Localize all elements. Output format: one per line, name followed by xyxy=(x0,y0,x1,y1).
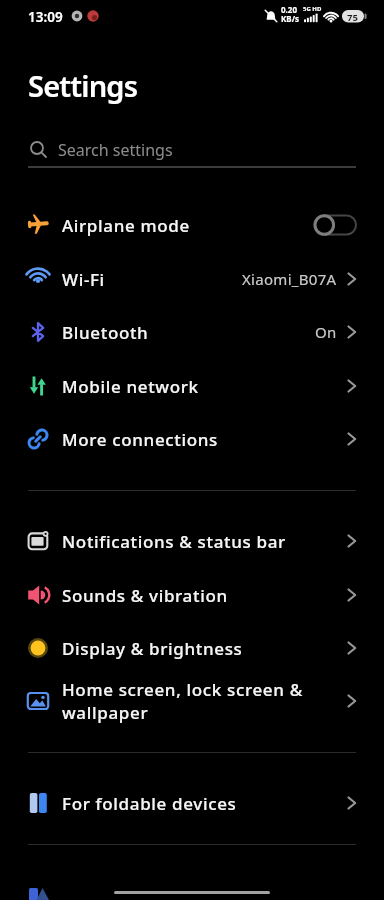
staticText: 0.20 xyxy=(281,4,297,15)
staticText: More connections xyxy=(62,428,218,451)
button[interactable]: Home screen, lock screen & wallpaper xyxy=(0,663,384,739)
staticText: For foldable devices xyxy=(62,792,237,815)
staticText: Bluetooth xyxy=(62,321,149,344)
staticText: Sounds & vibration xyxy=(62,584,228,607)
staticText: Mobile network xyxy=(62,375,199,398)
staticText: Search settings xyxy=(58,139,173,161)
staticText: Wi-Fi xyxy=(62,268,105,291)
button[interactable]: More connections xyxy=(0,412,384,466)
button[interactable]: For foldable devices xyxy=(0,776,384,830)
button[interactable]: Notifications & status bar xyxy=(0,514,384,568)
staticText: Display & brightness xyxy=(62,637,243,660)
button[interactable]: Bluetooth xyxy=(0,305,384,359)
button[interactable]: Wi-Fi xyxy=(0,252,384,306)
staticText: Settings xyxy=(28,66,138,105)
staticText: 5G HD xyxy=(303,5,322,13)
button[interactable]: Display & brightness xyxy=(0,621,384,675)
staticText: Airplane mode xyxy=(62,214,190,237)
staticText: Xiaomi_B07A xyxy=(242,269,337,289)
button[interactable]: Sounds & vibration xyxy=(0,568,384,622)
button[interactable]: Mobile network xyxy=(0,359,384,413)
staticText: 75 xyxy=(347,11,358,24)
button[interactable]: Airplane mode xyxy=(0,198,384,252)
staticText: Home screen, lock screen & wallpaper xyxy=(62,678,303,724)
staticText: 13:09 xyxy=(28,8,63,26)
button[interactable]: Search settings xyxy=(0,130,384,170)
staticText: Notifications & status bar xyxy=(62,530,286,553)
staticText: On xyxy=(315,322,337,342)
staticText: KB/s xyxy=(281,13,299,24)
